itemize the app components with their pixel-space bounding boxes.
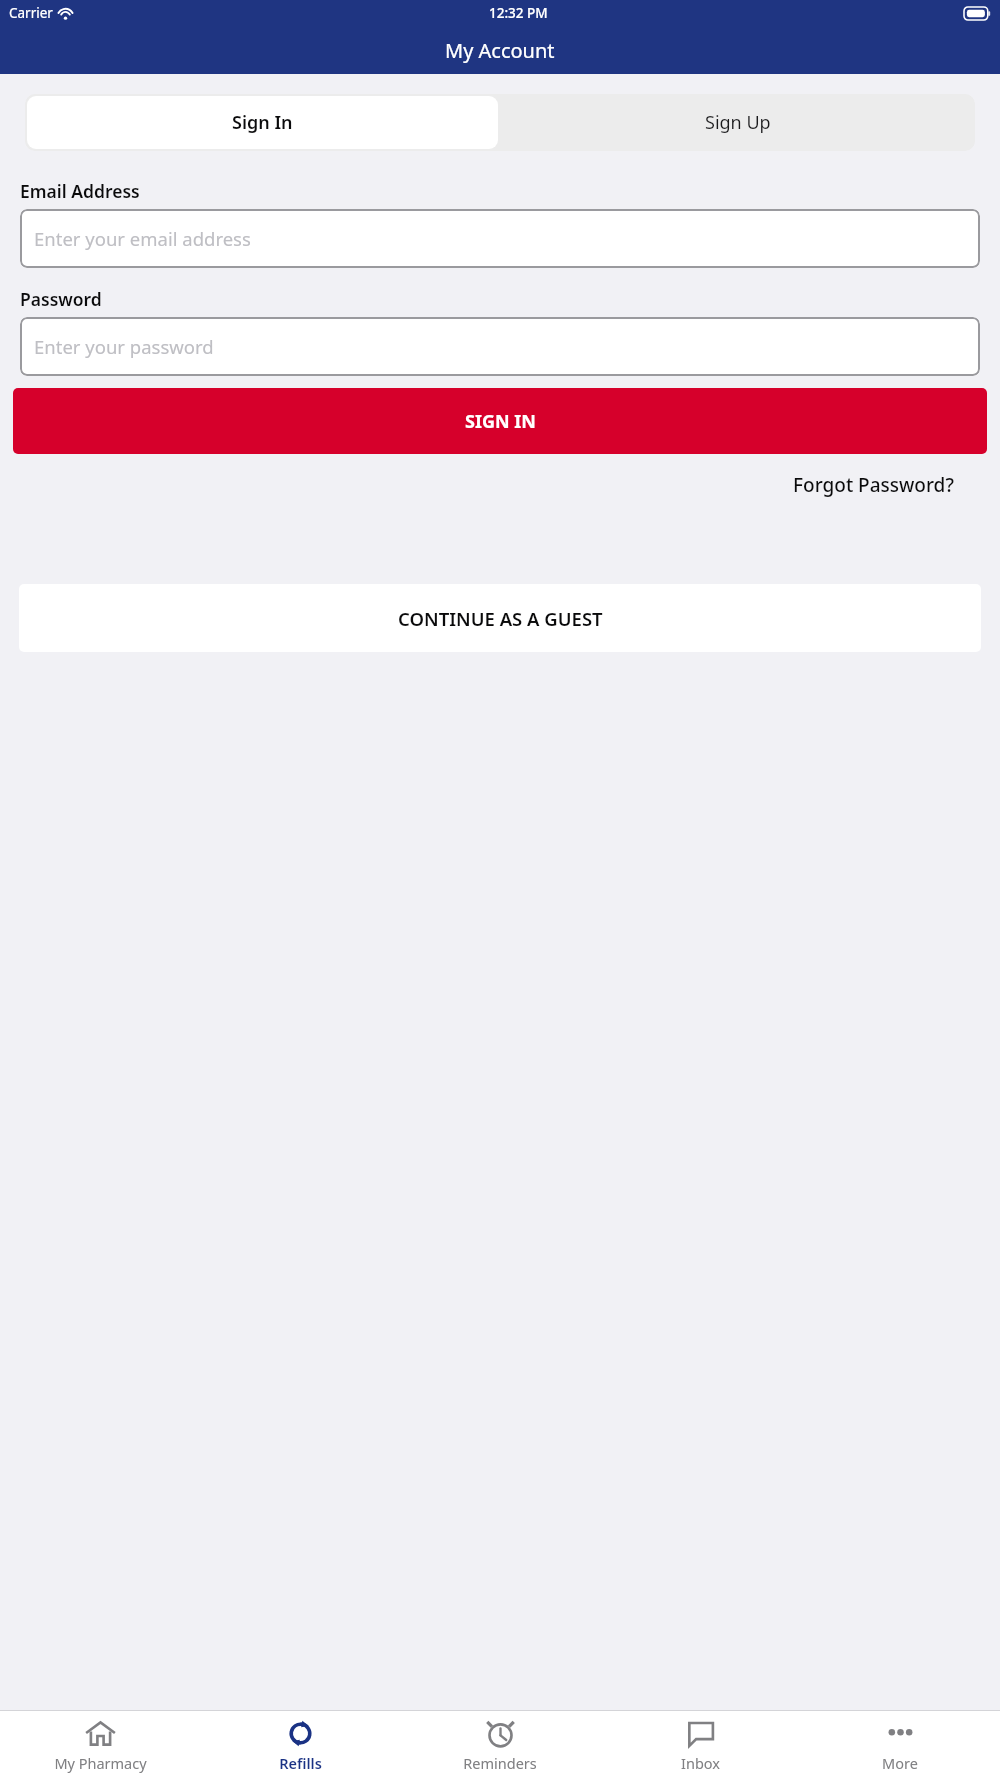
button[interactable]: SIGN IN	[13, 388, 987, 454]
button[interactable]: Enter your email address	[20, 209, 980, 268]
button[interactable]: Sign Up	[500, 94, 975, 151]
staticText: CONTINUE AS A GUEST	[398, 606, 603, 631]
button[interactable]: CONTINUE AS A GUEST	[19, 584, 981, 652]
staticText: Sign Up	[705, 110, 771, 135]
staticText: 12:32 PM	[489, 4, 548, 22]
staticText: More	[882, 1753, 918, 1773]
button[interactable]: Forgot Password?	[793, 470, 1000, 500]
staticText: Password	[20, 287, 102, 311]
staticText: Reminders	[463, 1753, 537, 1773]
staticText: My Account	[445, 37, 555, 64]
button[interactable]: More	[800, 1711, 1000, 1778]
button[interactable]: My Pharmacy	[0, 1711, 200, 1778]
staticText: Email Address	[20, 179, 140, 203]
staticText: Carrier	[9, 4, 53, 22]
staticText: Inbox	[681, 1753, 720, 1773]
button[interactable]: Enter your password	[20, 317, 980, 376]
button[interactable]: Reminders	[400, 1711, 600, 1778]
staticText: Sign In	[232, 110, 293, 135]
staticText: Forgot Password?	[793, 472, 954, 498]
staticText: Refills	[279, 1753, 322, 1773]
staticText: Enter your password	[34, 334, 214, 359]
button[interactable]: Inbox	[600, 1711, 800, 1778]
button[interactable]: Sign In	[27, 96, 498, 149]
staticText: My Pharmacy	[54, 1753, 147, 1773]
staticText: Enter your email address	[34, 226, 251, 251]
staticText: SIGN IN	[465, 409, 536, 434]
button[interactable]: Refills	[200, 1711, 400, 1778]
